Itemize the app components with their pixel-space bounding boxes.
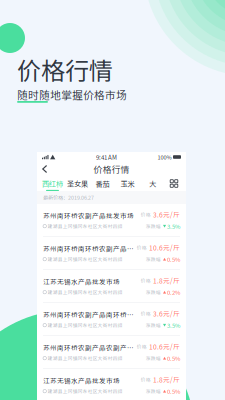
staticText: 番茄 bbox=[95, 178, 109, 189]
staticText: 3.6元/斤 bbox=[153, 309, 180, 318]
button[interactable]: 返回 bbox=[37, 162, 52, 176]
staticText: 涨跌幅 bbox=[146, 388, 161, 395]
staticText: 价格 bbox=[141, 310, 151, 317]
staticText: 建湖县上冈镇冈东社区大街村四组 bbox=[48, 289, 123, 296]
staticText: 随时随地掌握价格市场 bbox=[17, 87, 127, 102]
button[interactable]: 江苏无锡水产品批发市场 bbox=[37, 270, 186, 303]
staticText: 价格 bbox=[141, 277, 151, 284]
staticText: 9:41 AM bbox=[96, 153, 117, 161]
button[interactable]: 大 bbox=[140, 176, 165, 191]
staticText: 价格行情 bbox=[17, 52, 113, 87]
staticText: 3.5% bbox=[167, 321, 180, 329]
staticText: 价格 bbox=[137, 343, 147, 350]
staticText: 建湖县上冈镇冈东社区大街村四组 bbox=[48, 322, 123, 329]
staticText: 10.6元/斤 bbox=[149, 243, 180, 252]
staticText: 建湖县上冈镇冈东社区大街村四组 bbox=[48, 355, 123, 362]
staticText: 玉米 bbox=[120, 178, 134, 189]
staticText: 江苏无锡水产品批发市场 bbox=[43, 376, 120, 385]
staticText: 1.8元/斤 bbox=[153, 276, 180, 285]
staticText: 苏州南环桥农副产品批发市场 bbox=[43, 211, 134, 220]
button[interactable]: 圣女果 bbox=[65, 176, 90, 191]
staticText: 涨跌幅 bbox=[146, 289, 161, 296]
staticText: 3.5% bbox=[167, 222, 180, 230]
staticText: 价格 bbox=[137, 244, 147, 251]
button[interactable]: 苏州南环桥农副产品批发市场 bbox=[37, 204, 186, 237]
staticText: 大 bbox=[149, 178, 156, 189]
staticText: 100% bbox=[158, 153, 172, 161]
staticText: 苏州南环桥农副产品农副产品… bbox=[43, 343, 135, 352]
staticText: 江苏无锡水产品批发市场 bbox=[43, 277, 120, 286]
staticText: 涨跌幅 bbox=[146, 223, 161, 230]
staticText: 0.2% bbox=[167, 288, 180, 296]
button[interactable]: 苏州南环桥农副产品农副产品… bbox=[37, 336, 186, 369]
staticText: 涨跌幅 bbox=[146, 355, 161, 362]
staticText: 最新价格：2019.06.27 bbox=[43, 194, 94, 201]
staticText: 西红柿 bbox=[42, 178, 63, 189]
staticText: 涨跌幅 bbox=[146, 256, 161, 263]
staticText: 建湖县上冈镇冈东社区大街村四组 bbox=[48, 256, 123, 263]
staticText: 建湖县上冈镇冈东社区大街村四组 bbox=[48, 223, 123, 230]
button[interactable]: 苏州南环桥农副产品南环桥农产… bbox=[37, 303, 186, 336]
staticText: 0.5% bbox=[167, 255, 180, 263]
staticText: 价格行情 bbox=[93, 163, 129, 175]
staticText: 苏州南环桥农副产品南环桥农产… bbox=[43, 310, 139, 319]
staticText: 0.5% bbox=[167, 387, 180, 395]
button[interactable]: 番茄 bbox=[90, 176, 115, 191]
staticText: 圣女果 bbox=[67, 178, 88, 189]
staticText: 0.5% bbox=[167, 354, 180, 362]
staticText: 苏州南环桥南环桥农副产品批… bbox=[43, 244, 135, 253]
staticText: 3.6元/斤 bbox=[153, 210, 180, 219]
button[interactable]: 玉米 bbox=[115, 176, 140, 191]
staticText: 价格 bbox=[141, 376, 151, 383]
staticText: 10.6元/斤 bbox=[149, 342, 180, 351]
staticText: 建湖县上冈镇冈东社区大街村四组 bbox=[48, 388, 123, 395]
button[interactable]: 江苏无锡水产品批发市场 bbox=[37, 369, 186, 400]
staticText: 涨跌幅 bbox=[146, 322, 161, 329]
staticText: 价格 bbox=[141, 211, 151, 218]
staticText: 1.8元/斤 bbox=[153, 375, 180, 384]
button[interactable]: 分类 bbox=[165, 176, 183, 191]
button[interactable]: 西红柿 bbox=[40, 176, 65, 191]
button[interactable]: 苏州南环桥南环桥农副产品批… bbox=[37, 237, 186, 270]
